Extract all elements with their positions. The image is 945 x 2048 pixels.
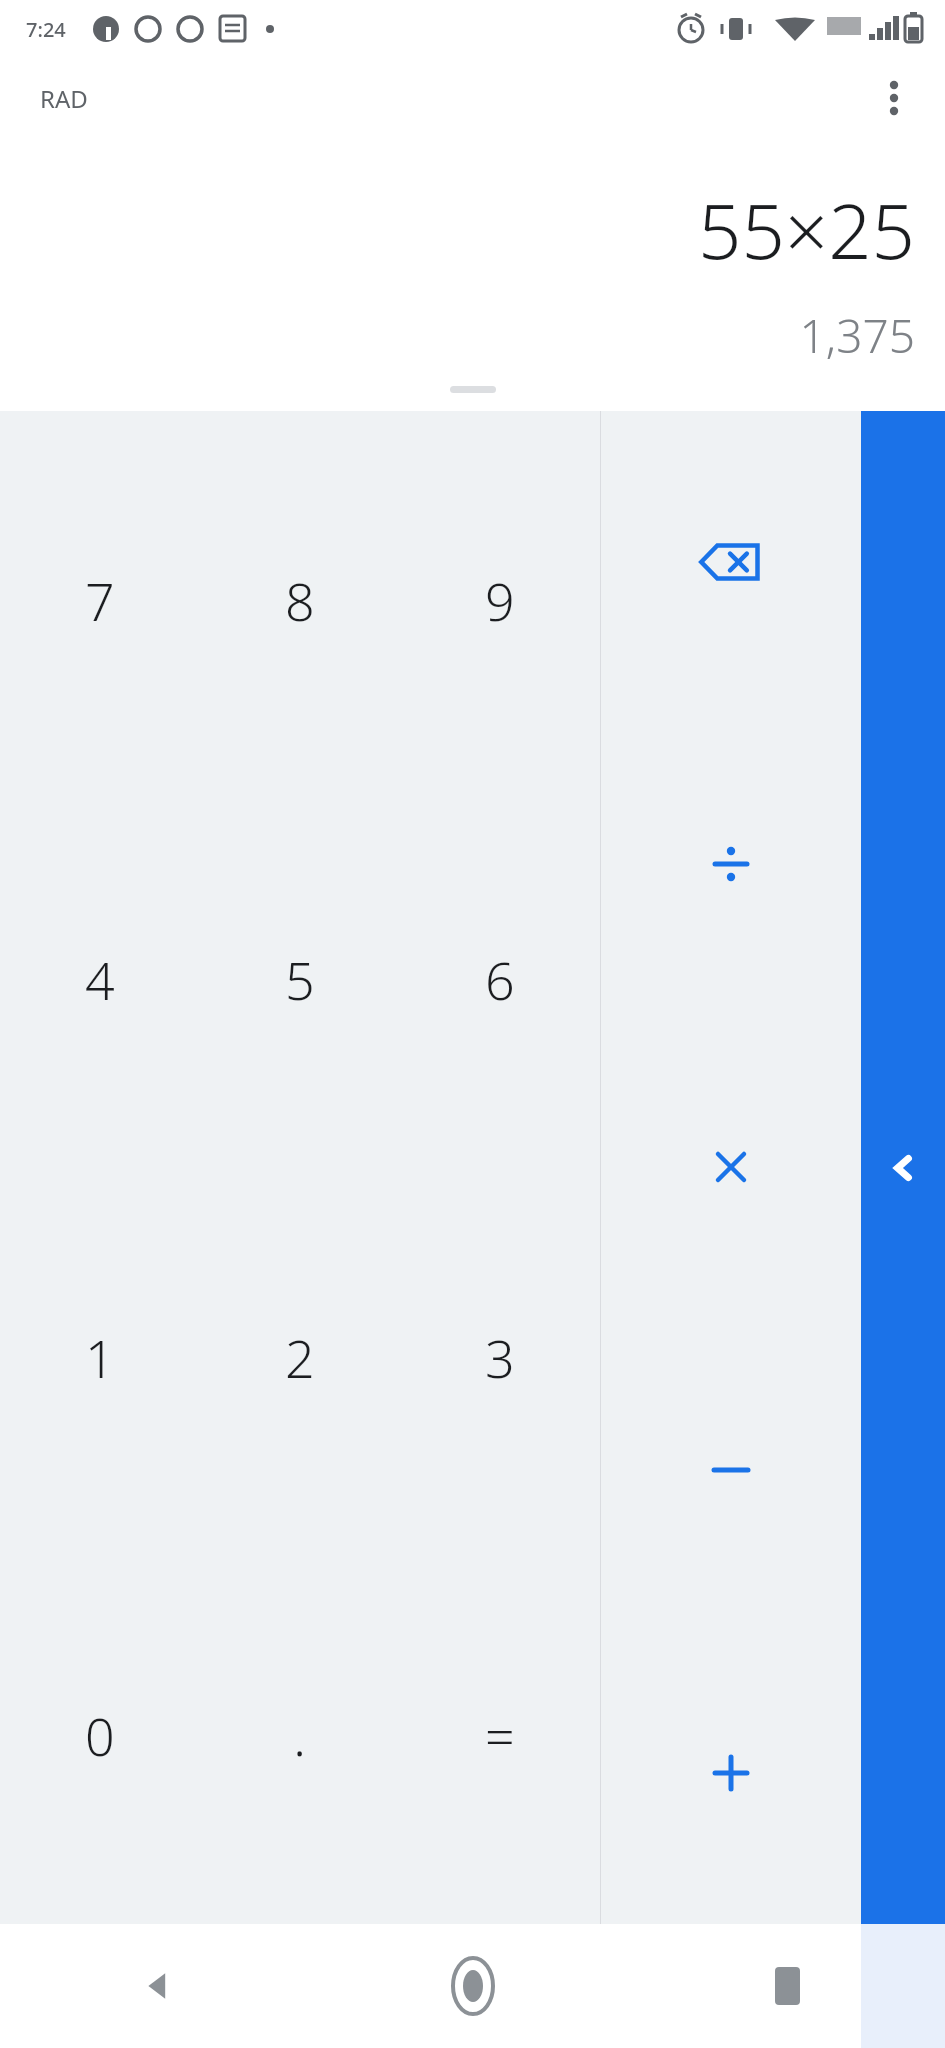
button[interactable]: More options	[865, 69, 923, 127]
other: Backspace	[700, 541, 762, 583]
staticText: 6	[485, 944, 515, 1015]
staticText: 9	[485, 565, 515, 636]
staticText: 4	[85, 944, 115, 1015]
staticText: 55×25	[698, 178, 915, 282]
button[interactable]: 9	[400, 411, 600, 790]
button[interactable]: 5	[200, 790, 400, 1168]
staticText: =	[485, 1700, 515, 1771]
staticText: .	[293, 1698, 307, 1772]
button[interactable]: 0	[0, 1546, 200, 1924]
button[interactable]: 8	[200, 411, 400, 790]
other: Divide	[713, 846, 749, 882]
other: Multiply	[714, 1150, 748, 1184]
staticText: 1,375	[799, 304, 915, 367]
button[interactable]: RAD	[40, 82, 88, 115]
button[interactable]: Minus	[601, 1318, 861, 1621]
button[interactable]: Back	[0, 1924, 315, 2048]
button[interactable]: Multiply	[601, 1015, 861, 1318]
other: Minus	[713, 1452, 749, 1488]
staticText: 7	[85, 565, 115, 636]
staticText: 7:24	[26, 16, 66, 43]
button[interactable]: 3	[400, 1168, 600, 1546]
button[interactable]: Backspace	[601, 411, 861, 713]
button[interactable]: 7	[0, 411, 200, 790]
staticText: 1	[85, 1322, 115, 1393]
other: Plus	[713, 1755, 749, 1791]
staticText: 2	[285, 1322, 315, 1393]
button[interactable]: 1	[0, 1168, 200, 1546]
staticText: 5	[285, 944, 315, 1015]
staticText: 0	[85, 1700, 115, 1771]
button[interactable]: Recent apps	[630, 1924, 945, 2048]
button[interactable]: =	[400, 1546, 600, 1924]
staticText: 3	[485, 1322, 515, 1393]
staticText: 8	[285, 565, 315, 636]
button[interactable]: Home	[315, 1924, 630, 2048]
button[interactable]: 4	[0, 790, 200, 1168]
button[interactable]: 6	[400, 790, 600, 1168]
button[interactable]: Expand advanced pad	[861, 411, 945, 1924]
button[interactable]: 2	[200, 1168, 400, 1546]
button[interactable]: Divide	[601, 713, 861, 1015]
button[interactable]: Plus	[601, 1621, 861, 1924]
